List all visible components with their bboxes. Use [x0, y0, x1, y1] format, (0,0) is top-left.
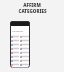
staticText: CATEGORIES — [18, 8, 47, 14]
button[interactable] — [20, 39, 29, 42]
button[interactable] — [11, 59, 19, 62]
staticText: Categories — [12, 30, 24, 33]
button[interactable] — [11, 39, 19, 42]
button[interactable] — [11, 63, 19, 66]
button[interactable] — [20, 63, 29, 66]
button[interactable] — [20, 51, 29, 54]
button[interactable] — [11, 43, 19, 46]
button[interactable] — [20, 55, 29, 58]
button[interactable] — [11, 55, 19, 58]
button[interactable] — [20, 43, 29, 46]
button[interactable] — [20, 47, 29, 50]
staticText: AFFIRM — [23, 2, 41, 8]
button[interactable] — [20, 59, 29, 62]
button[interactable] — [11, 51, 19, 54]
button[interactable] — [11, 35, 19, 38]
button[interactable] — [20, 35, 29, 38]
button[interactable] — [11, 47, 19, 50]
